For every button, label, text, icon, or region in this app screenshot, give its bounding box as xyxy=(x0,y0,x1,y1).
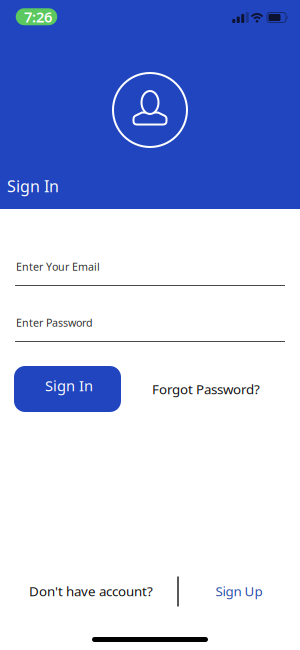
staticText: 7:26 xyxy=(24,7,52,26)
button[interactable]: Forgot Password? xyxy=(152,380,260,398)
textField[interactable]: Enter Your Email xyxy=(16,259,300,274)
button[interactable]: 7:26 xyxy=(16,8,57,25)
button[interactable]: Sign In xyxy=(14,366,121,412)
staticText: Don't have account? xyxy=(29,582,153,600)
button[interactable]: Sign Up xyxy=(215,582,262,600)
textField[interactable]: Enter Password xyxy=(16,315,300,330)
staticText: Sign In xyxy=(7,175,59,197)
staticText: Enter Password xyxy=(16,315,93,330)
staticText: Enter Your Email xyxy=(16,259,100,274)
staticText: Sign In xyxy=(45,376,93,395)
staticText: Sign Up xyxy=(215,582,262,600)
staticText: Forgot Password? xyxy=(152,380,260,398)
